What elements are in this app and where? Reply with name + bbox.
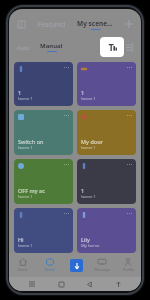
button[interactable]: Scene xyxy=(36,253,63,277)
staticText: home 1 xyxy=(18,96,33,102)
button[interactable]: 1 xyxy=(77,159,136,204)
button[interactable]: Home list xyxy=(14,17,28,31)
button[interactable]: Add scene xyxy=(122,17,136,31)
staticText: My scene... xyxy=(77,19,113,28)
button[interactable]: List view xyxy=(123,41,135,53)
staticText: Manual xyxy=(40,42,63,50)
staticText: Featured xyxy=(38,20,66,29)
staticText: 1 xyxy=(81,187,85,194)
button[interactable]: Home xyxy=(9,253,36,277)
button[interactable]: Featured xyxy=(35,20,69,29)
staticText: My home xyxy=(81,243,100,249)
staticText: home 1 xyxy=(18,243,33,249)
staticText: Message xyxy=(95,267,110,272)
staticText: Profile xyxy=(123,267,134,272)
staticText: Lily xyxy=(81,236,90,243)
button[interactable]: Hi xyxy=(14,208,73,253)
button[interactable]: Back xyxy=(84,279,94,289)
staticText: Hi xyxy=(18,236,24,243)
button[interactable]: 1 xyxy=(14,62,73,106)
button[interactable]: My scene... xyxy=(75,19,115,30)
button[interactable]: Message xyxy=(89,253,115,277)
staticText: home 1 xyxy=(81,194,96,200)
button[interactable]: Recents xyxy=(27,279,37,289)
staticText: 1 xyxy=(81,89,85,96)
staticText: Auto xyxy=(17,44,30,51)
button[interactable]: Lily xyxy=(77,208,136,253)
staticText: My door xyxy=(81,138,103,145)
button[interactable]: Up xyxy=(113,279,123,289)
staticText: OFF my ac xyxy=(18,187,45,194)
button[interactable]: Home xyxy=(56,279,66,289)
button[interactable]: Auto xyxy=(15,44,32,51)
button[interactable]: Manual xyxy=(39,42,64,52)
staticText: home 1 xyxy=(81,145,96,151)
button[interactable]: Profile xyxy=(115,253,141,277)
staticText: home 1 xyxy=(18,145,33,151)
staticText: Switch on xyxy=(18,138,44,145)
button[interactable]: OFF my ac xyxy=(14,159,73,204)
button[interactable]: Switch on xyxy=(14,110,73,155)
button[interactable]: Sort and filter xyxy=(100,37,124,57)
button[interactable]: Add xyxy=(70,259,83,272)
staticText: home 1 xyxy=(18,194,33,200)
staticText: 1 xyxy=(18,89,22,96)
button[interactable]: 1 xyxy=(77,62,136,106)
staticText: Scene xyxy=(45,267,55,272)
button[interactable]: My door xyxy=(77,110,136,155)
staticText: Home xyxy=(17,267,28,272)
staticText: home 1 xyxy=(81,96,96,102)
